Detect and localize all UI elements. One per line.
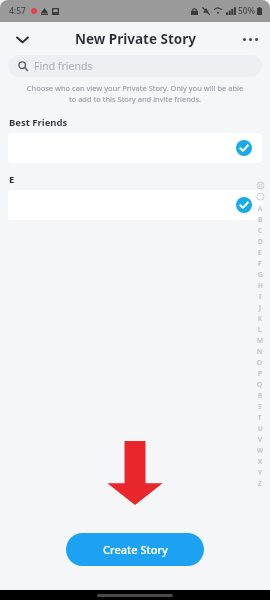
button[interactable]: G xyxy=(253,269,267,280)
button[interactable]: X xyxy=(253,456,267,467)
button[interactable]: D xyxy=(253,236,267,247)
staticText: Best Friends xyxy=(9,116,68,129)
staticText: I xyxy=(259,292,262,301)
staticText: D xyxy=(258,237,263,246)
button[interactable]: M xyxy=(253,335,267,346)
button[interactable]: B xyxy=(253,214,267,225)
staticText: X xyxy=(258,457,262,466)
staticText: L xyxy=(258,325,262,334)
staticText: A xyxy=(258,204,263,213)
staticText: Choose who can view your Private Story. … xyxy=(18,83,252,104)
button[interactable]: U xyxy=(253,423,267,434)
button[interactable]: C xyxy=(253,225,267,236)
button[interactable]: Y xyxy=(253,467,267,478)
button[interactable]: K xyxy=(253,313,267,324)
button[interactable]: P xyxy=(253,368,267,379)
staticText: M xyxy=(257,336,263,345)
button[interactable]: I xyxy=(253,291,267,302)
button[interactable]: L xyxy=(253,324,267,335)
staticText: W xyxy=(257,446,264,455)
staticText: J xyxy=(259,303,261,312)
button[interactable]: H xyxy=(253,280,267,291)
button[interactable]: Q xyxy=(253,379,267,390)
button[interactable]: T xyxy=(253,412,267,423)
staticText: E xyxy=(9,173,15,186)
staticText: 4:57 xyxy=(9,5,26,17)
button[interactable] xyxy=(8,133,262,163)
staticText: S xyxy=(258,402,262,411)
staticText: P xyxy=(258,369,262,378)
staticText: U xyxy=(258,424,263,433)
staticText: New Private Story xyxy=(75,30,196,48)
staticText: G xyxy=(258,270,263,279)
staticText: Create Story xyxy=(103,542,168,557)
button[interactable]: Create Story xyxy=(66,533,204,566)
staticText: B xyxy=(258,215,263,224)
button[interactable]: J xyxy=(253,302,267,313)
staticText: Find friends xyxy=(34,59,93,73)
button[interactable] xyxy=(8,190,262,220)
staticText: T xyxy=(258,413,262,422)
button[interactable]: A xyxy=(253,203,267,214)
staticText: N xyxy=(257,347,263,356)
button[interactable]: O xyxy=(253,357,267,368)
staticText: F xyxy=(258,259,262,268)
staticText: Q xyxy=(257,380,263,389)
staticText: Z xyxy=(258,479,262,488)
staticText: K xyxy=(258,314,263,323)
staticText: C xyxy=(258,226,263,235)
staticText: 50% xyxy=(238,5,255,17)
button[interactable]: F xyxy=(253,258,267,269)
button[interactable]: Z xyxy=(253,478,267,489)
button[interactable]: E xyxy=(253,247,267,258)
button[interactable]: V xyxy=(253,434,267,445)
button[interactable]: S xyxy=(253,401,267,412)
staticText: Y xyxy=(258,468,262,477)
staticText: H xyxy=(258,281,263,290)
button[interactable]: R xyxy=(253,390,267,401)
button[interactable]: N xyxy=(253,346,267,357)
button[interactable]: W xyxy=(253,445,267,456)
button[interactable]: Find friends xyxy=(8,55,262,77)
staticText: V xyxy=(258,435,262,444)
staticText: E xyxy=(258,248,262,257)
button[interactable]: More options xyxy=(236,25,264,53)
button[interactable]: Close xyxy=(8,25,36,53)
staticText: O xyxy=(257,358,263,367)
staticText: R xyxy=(258,391,263,400)
